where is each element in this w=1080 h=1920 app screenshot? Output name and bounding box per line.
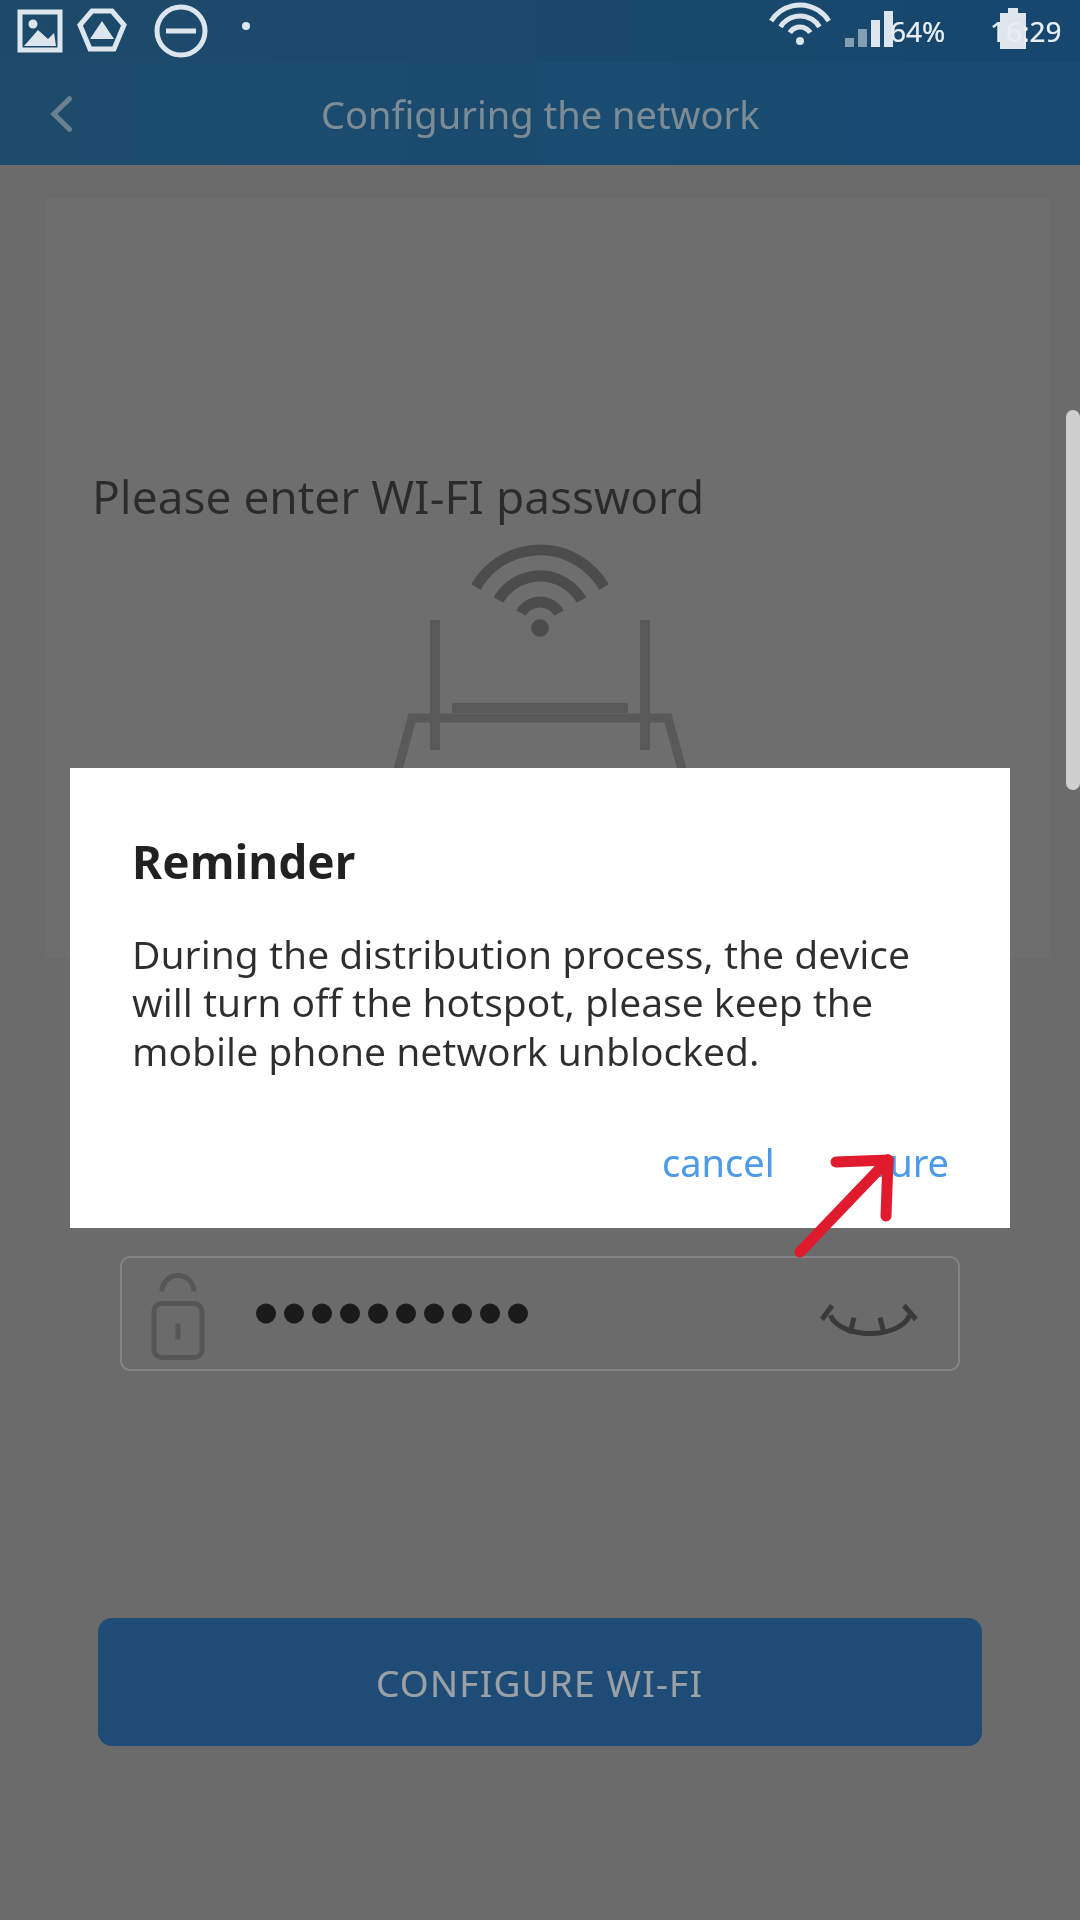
button[interactable]: sure (845, 1118, 976, 1206)
button[interactable] (120, 1256, 960, 1371)
staticText: sure (871, 1136, 950, 1188)
staticText: CONFIGURE WI-FI (376, 1657, 704, 1707)
staticText: 64% (890, 12, 946, 50)
staticText: 16:29 (990, 12, 1062, 50)
staticText: During the distribution process, the dev… (132, 927, 962, 1078)
button[interactable]: cancel (636, 1118, 801, 1206)
staticText: Please enter WI-FI password (92, 465, 705, 528)
staticText: Configuring the network (321, 88, 760, 140)
staticText: Reminder (132, 830, 356, 893)
button[interactable]: Back (26, 78, 98, 150)
staticText: cancel (662, 1136, 775, 1188)
button[interactable]: CONFIGURE WI-FI (98, 1618, 982, 1746)
